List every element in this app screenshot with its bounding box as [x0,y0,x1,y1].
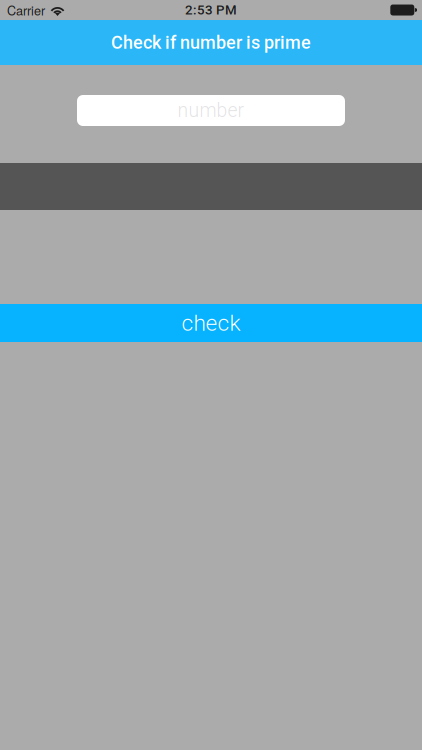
staticText: check [181,310,240,336]
staticText: Carrier [7,1,45,19]
staticText: Check if number is prime [111,32,311,53]
button[interactable]: check [0,304,422,342]
staticText: number [177,99,244,122]
staticText: 2:53 PM [185,2,237,18]
